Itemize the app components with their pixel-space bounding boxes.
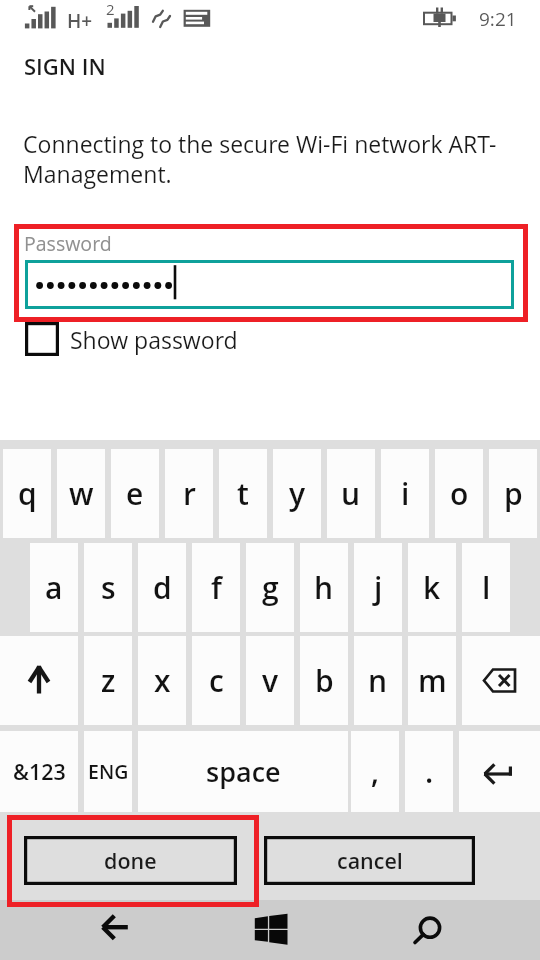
button[interactable]: e <box>111 449 159 538</box>
staticText: 9:21 <box>479 6 517 32</box>
staticText: k <box>423 567 441 608</box>
staticText: . <box>425 751 434 792</box>
button[interactable]: Enter <box>459 731 540 812</box>
staticText: H+ <box>67 8 93 34</box>
staticText: a <box>45 567 63 608</box>
button[interactable]: u <box>327 449 375 538</box>
staticText: f <box>211 567 222 608</box>
button[interactable]: v <box>246 636 294 725</box>
staticText: s <box>101 567 116 608</box>
button[interactable]: p <box>489 449 537 538</box>
button[interactable]: Show password <box>25 322 238 356</box>
staticText: Show password <box>70 324 238 355</box>
staticText: ENG <box>88 758 129 785</box>
button[interactable]: j <box>354 543 402 632</box>
button[interactable]: n <box>354 636 402 725</box>
staticText: cancel <box>337 846 403 875</box>
staticText: Connecting to the secure Wi-Fi network A… <box>23 128 523 190</box>
staticText: c <box>209 660 224 701</box>
button[interactable]: z <box>84 636 132 725</box>
staticText: , <box>371 751 380 792</box>
button[interactable]: i <box>381 449 429 538</box>
staticText: r <box>183 473 196 514</box>
button[interactable]: Start <box>230 900 310 960</box>
button[interactable]: d <box>138 543 186 632</box>
button[interactable]: t <box>219 449 267 538</box>
staticText: p <box>504 473 523 514</box>
button[interactable]: Backspace <box>462 636 540 725</box>
button[interactable]: o <box>435 449 483 538</box>
staticText: z <box>101 660 116 701</box>
staticText: m <box>418 660 447 701</box>
staticText: u <box>341 473 361 514</box>
button[interactable]: b <box>300 636 348 725</box>
staticText: done <box>104 846 157 875</box>
button[interactable]: h <box>300 543 348 632</box>
button[interactable]: done <box>24 836 237 885</box>
staticText: Password <box>24 230 112 257</box>
button[interactable]: space <box>138 731 348 812</box>
button[interactable]: q <box>3 449 51 538</box>
staticText: w <box>69 473 94 514</box>
button[interactable]: a <box>30 543 78 632</box>
button[interactable]: l <box>462 543 510 632</box>
staticText: e <box>126 473 144 514</box>
button[interactable]: Search <box>390 900 470 960</box>
staticText: j <box>374 567 383 608</box>
button[interactable]: . <box>405 731 453 812</box>
staticText: v <box>262 660 279 701</box>
staticText: t <box>237 473 249 514</box>
button[interactable]: Shift <box>0 636 78 725</box>
staticText: space <box>206 753 281 790</box>
staticText: o <box>450 473 469 514</box>
staticText: l <box>482 567 491 608</box>
staticText: x <box>154 660 171 701</box>
button[interactable]: g <box>246 543 294 632</box>
button[interactable]: , <box>351 731 399 812</box>
staticText: SIGN IN <box>24 51 106 81</box>
button[interactable]: x <box>138 636 186 725</box>
button[interactable]: Back <box>75 900 155 960</box>
button[interactable]: cancel <box>264 836 475 885</box>
button[interactable]: ENG <box>84 731 132 812</box>
button[interactable]: y <box>273 449 321 538</box>
button[interactable]: k <box>408 543 456 632</box>
staticText: h <box>314 567 334 608</box>
button[interactable]: &123 <box>0 731 78 812</box>
staticText: 2 <box>106 0 115 19</box>
staticText: y <box>289 473 306 514</box>
button[interactable]: Password field <box>25 260 514 309</box>
button[interactable]: f <box>192 543 240 632</box>
button[interactable]: w <box>57 449 105 538</box>
staticText: n <box>368 660 388 701</box>
button[interactable]: c <box>192 636 240 725</box>
button[interactable]: r <box>165 449 213 538</box>
button[interactable]: s <box>84 543 132 632</box>
staticText: &123 <box>13 757 66 786</box>
staticText: b <box>315 660 334 701</box>
staticText: g <box>262 567 279 608</box>
button[interactable]: m <box>408 636 456 725</box>
staticText: q <box>18 473 37 514</box>
staticText: d <box>153 567 172 608</box>
staticText: i <box>401 473 410 514</box>
